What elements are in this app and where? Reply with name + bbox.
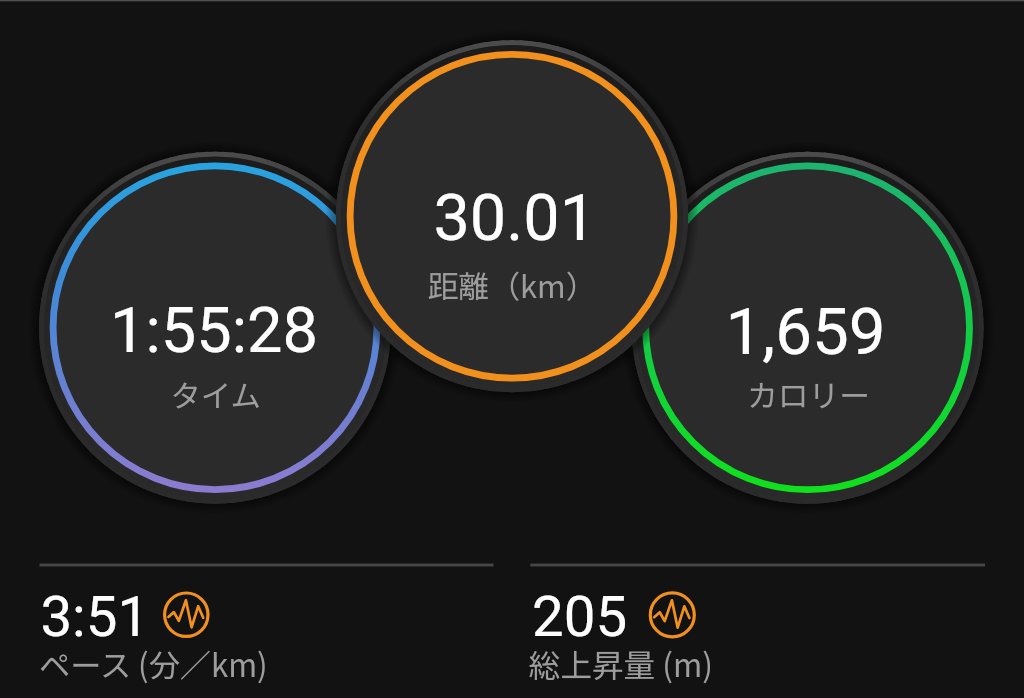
button[interactable]: Workout summary [0,0,1024,698]
